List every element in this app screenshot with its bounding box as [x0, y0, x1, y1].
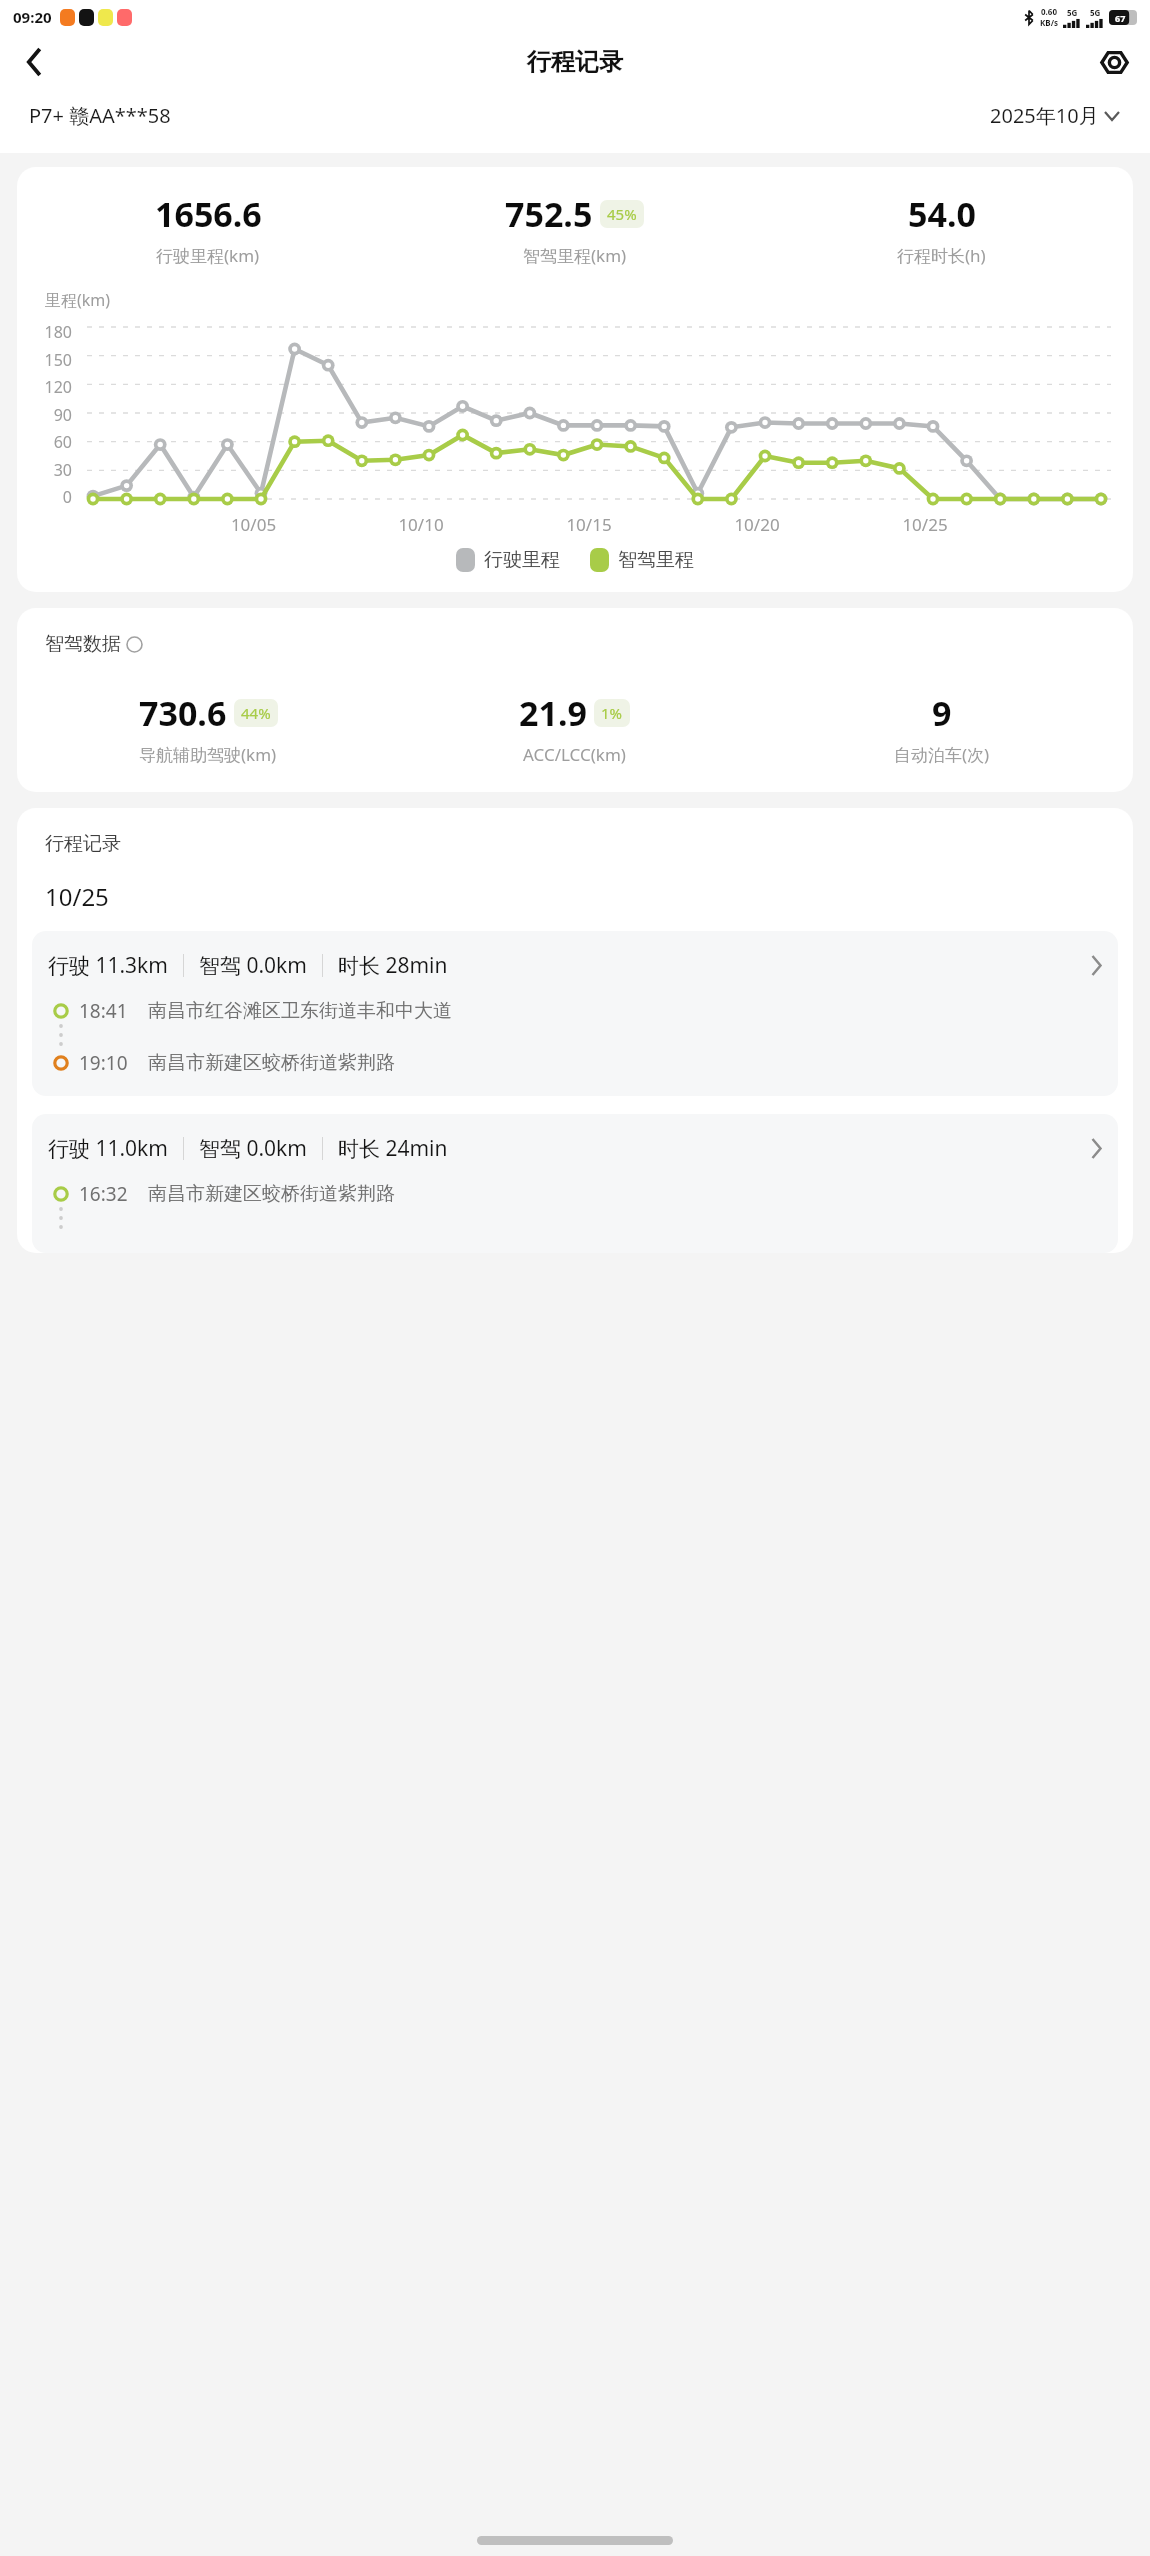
staticText: 行驶里程(km): [156, 244, 260, 267]
staticText: 导航辅助驾驶(km): [139, 743, 277, 766]
button[interactable]: Settings: [1088, 36, 1140, 88]
staticText: 21.9: [519, 690, 587, 736]
staticText: 10/15: [505, 513, 673, 536]
staticText: 行驶 11.3km: [48, 951, 168, 980]
staticText: 10/10: [337, 513, 505, 536]
staticText: 0.60: [1041, 6, 1057, 17]
staticText: 南昌市新建区蛟桥街道紫荆路: [148, 1051, 395, 1075]
staticText: 智驾数据: [45, 632, 121, 656]
staticText: 行程时长(h): [897, 244, 986, 267]
staticText: 1%: [601, 703, 623, 723]
button[interactable]: 2025年10月: [988, 100, 1121, 131]
staticText: 10/05: [170, 513, 337, 536]
button[interactable]: Back: [8, 36, 60, 88]
staticText: P7+ 赣AA***58: [29, 102, 171, 129]
staticText: 里程(km): [45, 289, 111, 311]
staticText: 0: [62, 486, 72, 508]
staticText: 自动泊车(次): [894, 743, 990, 766]
staticText: 2025年10月: [990, 102, 1099, 129]
staticText: 1656.6: [155, 191, 262, 237]
staticText: 10/25: [841, 513, 1009, 536]
staticText: ACC/LCC(km): [523, 743, 626, 766]
staticText: KB/s: [1040, 17, 1058, 28]
staticText: 16:32: [79, 1181, 128, 1207]
button[interactable]: 行驶里程: [456, 548, 560, 572]
staticText: 行程记录: [45, 832, 121, 856]
staticText: 30: [53, 459, 72, 481]
button[interactable]: 智驾里程: [590, 548, 694, 572]
staticText: 智驾里程(km): [523, 244, 627, 267]
staticText: 150: [44, 349, 72, 371]
button[interactable]: 行驶 11.3km: [32, 931, 1118, 1096]
staticText: 19:10: [79, 1050, 128, 1076]
staticText: 5G: [1090, 7, 1101, 18]
staticText: 南昌市红谷滩区卫东街道丰和中大道: [148, 999, 452, 1023]
staticText: 180: [44, 321, 72, 343]
staticText: 18:41: [79, 998, 128, 1024]
staticText: 90: [53, 404, 72, 426]
staticText: 44%: [241, 703, 271, 723]
staticText: 时长 24min: [338, 1134, 448, 1163]
staticText: 730.6: [139, 690, 227, 736]
staticText: 54.0: [908, 191, 976, 237]
staticText: 45%: [607, 204, 637, 224]
staticText: 智驾 0.0km: [199, 951, 307, 980]
staticText: 60: [53, 431, 72, 453]
staticText: 时长 28min: [338, 951, 448, 980]
staticText: 智驾里程: [618, 548, 694, 572]
staticText: 752.5: [505, 191, 593, 237]
staticText: 09:20: [13, 7, 52, 27]
staticText: 9: [932, 690, 952, 736]
staticText: 南昌市新建区蛟桥街道紫荆路: [148, 1182, 395, 1206]
staticText: 10/25: [45, 880, 109, 913]
staticText: 5G: [1067, 7, 1078, 18]
button[interactable]: 行驶 11.0km: [32, 1114, 1118, 1253]
staticText: 行驶里程: [484, 548, 560, 572]
staticText: 智驾 0.0km: [199, 1134, 307, 1163]
staticText: 120: [44, 376, 72, 398]
button[interactable]: 智驾数据: [45, 632, 143, 656]
staticText: 行程记录: [527, 47, 623, 77]
staticText: 67: [1115, 12, 1126, 24]
staticText: 10/20: [673, 513, 841, 536]
staticText: 行驶 11.0km: [48, 1134, 168, 1163]
